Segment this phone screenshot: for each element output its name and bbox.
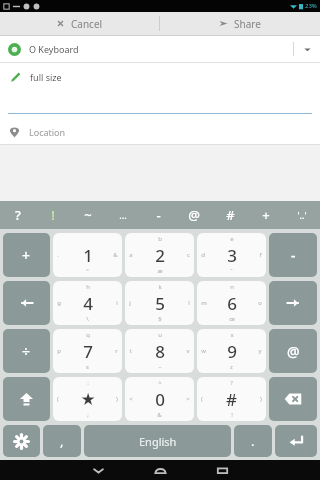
button[interactable]: !: [35, 201, 70, 229]
button[interactable]: Backspace: [269, 377, 317, 421]
button[interactable]: ?: [197, 377, 266, 421]
staticText: @: [188, 206, 200, 224]
staticText: 3: [227, 244, 237, 267]
button[interactable]: q: [53, 329, 122, 373]
staticText: .: [57, 251, 59, 259]
button[interactable]: b: [125, 233, 194, 277]
staticText: ?: [230, 379, 233, 387]
staticText: æ: [157, 267, 163, 275]
staticText: 0: [155, 388, 165, 411]
button[interactable]: n: [197, 281, 266, 325]
staticText: f: [259, 251, 262, 259]
staticText: ?: [15, 206, 21, 224]
staticText: Location: [29, 126, 66, 138]
staticText: x: [230, 331, 234, 339]
button[interactable]: @: [176, 201, 212, 229]
staticText: 4: [83, 292, 93, 315]
button[interactable]: +: [248, 201, 284, 229]
button[interactable]: °: [53, 233, 122, 277]
button[interactable]: English: [84, 425, 231, 457]
button[interactable]: ~: [70, 201, 105, 229]
button[interactable]: k: [125, 281, 194, 325]
button[interactable]: Expand account selector: [294, 36, 320, 62]
button[interactable]: e: [197, 233, 266, 277]
staticText: o: [258, 299, 262, 307]
button[interactable]: [0, 90, 320, 120]
staticText: !: [231, 411, 233, 419]
staticText: ,: [60, 432, 64, 450]
button[interactable]: -: [140, 201, 176, 229]
staticText: .: [251, 432, 255, 450]
staticText: +: [262, 206, 270, 224]
button[interactable]: Keyboard settings: [3, 425, 40, 457]
staticText: h: [86, 283, 90, 291]
staticText: Cancel: [71, 17, 103, 31]
staticText: r: [115, 347, 118, 355]
staticText: ˇ: [230, 267, 233, 275]
staticText: :: [87, 379, 89, 387]
staticText: w: [201, 347, 206, 355]
button[interactable]: Enter: [275, 425, 317, 457]
staticText: ÷: [22, 342, 31, 361]
button[interactable]: .: [234, 425, 272, 457]
button[interactable]: -: [269, 233, 317, 277]
button[interactable]: Location: [0, 120, 320, 144]
button[interactable]: x: [197, 329, 266, 373]
button[interactable]: O Keyboard: [0, 36, 320, 62]
staticText: (: [201, 395, 203, 403]
staticText: ^: [158, 379, 162, 387]
button[interactable]: @: [269, 329, 317, 373]
button[interactable]: ?: [0, 201, 35, 229]
staticText: 5: [155, 292, 165, 315]
staticText: Share: [234, 17, 261, 31]
staticText: 2: [155, 244, 165, 267]
staticText: k: [158, 283, 162, 291]
staticText: m: [201, 299, 207, 307]
staticText: ★: [80, 389, 96, 409]
staticText: t: [129, 347, 132, 355]
staticText: ;: [87, 411, 89, 419]
staticText: full size: [30, 71, 62, 83]
staticText: >: [186, 395, 190, 403]
staticText: 7: [83, 340, 93, 363]
staticText: y: [258, 347, 262, 355]
button[interactable]: Home: [129, 460, 191, 480]
button[interactable]: u: [125, 329, 194, 373]
staticText: c: [187, 251, 190, 259]
button[interactable]: +: [3, 233, 50, 277]
staticText: 1: [83, 244, 93, 267]
button[interactable]: Move cursor left: [3, 281, 50, 325]
staticText: ): [260, 395, 262, 403]
button[interactable]: #: [212, 201, 248, 229]
staticText: b: [158, 235, 162, 243]
staticText: °: [86, 267, 89, 275]
button[interactable]: ,: [43, 425, 81, 457]
button[interactable]: '..': [284, 201, 320, 229]
button[interactable]: Recent apps: [191, 460, 253, 480]
button[interactable]: ...: [105, 201, 140, 229]
button[interactable]: Shift: [3, 377, 50, 421]
button[interactable]: ÷: [3, 329, 50, 373]
staticText: (: [57, 395, 59, 403]
staticText: &: [113, 251, 118, 259]
staticText: 6: [227, 292, 237, 315]
button[interactable]: ^: [125, 377, 194, 421]
button[interactable]: Share: [160, 12, 320, 35]
button[interactable]: Cancel: [0, 12, 159, 35]
staticText: ...: [119, 209, 127, 221]
button[interactable]: :: [53, 377, 122, 421]
staticText: #: [226, 388, 237, 411]
staticText: -: [291, 246, 296, 265]
staticText: u: [158, 331, 162, 339]
button[interactable]: Move cursor right: [269, 281, 317, 325]
staticText: -: [156, 206, 161, 224]
staticText: a: [129, 251, 133, 259]
button[interactable]: Hide keyboard: [67, 460, 129, 480]
staticText: 23%: [305, 2, 317, 10]
staticText: v: [186, 347, 190, 355]
staticText: e: [230, 235, 234, 243]
button[interactable]: full size: [0, 63, 320, 90]
staticText: œ: [229, 315, 235, 323]
button[interactable]: h: [53, 281, 122, 325]
staticText: +: [22, 246, 31, 265]
